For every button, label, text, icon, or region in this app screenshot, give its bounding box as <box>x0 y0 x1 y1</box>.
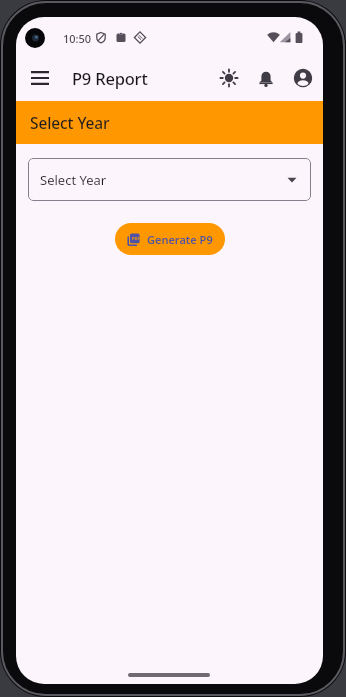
button[interactable]: Select Year <box>28 158 311 201</box>
staticText: Select Year <box>40 171 107 189</box>
button[interactable] <box>212 61 246 95</box>
staticText: 10:50 <box>63 31 92 46</box>
button[interactable]: PDF <box>115 223 225 255</box>
button[interactable] <box>23 61 57 95</box>
staticText: Select Year <box>30 112 110 133</box>
staticText: P9 Report <box>72 67 148 89</box>
staticText: PDF <box>132 236 140 241</box>
button[interactable] <box>286 61 320 95</box>
staticText: Generate P9 <box>147 232 213 247</box>
button[interactable] <box>249 61 283 95</box>
